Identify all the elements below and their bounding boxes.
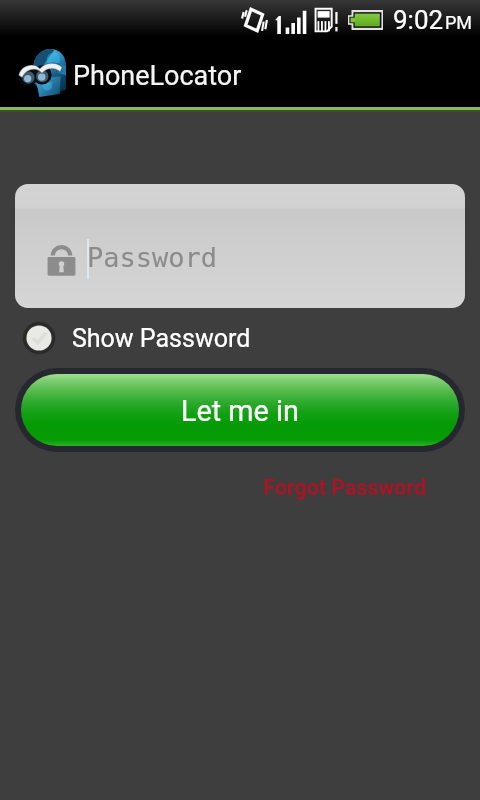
button[interactable]: Password bbox=[15, 184, 465, 308]
staticText: PM bbox=[445, 12, 473, 33]
staticText: 9:02 bbox=[393, 5, 444, 35]
staticText: Forgot Password bbox=[263, 475, 426, 500]
button[interactable]: Show Password bbox=[21, 315, 251, 361]
staticText: PhoneLocator bbox=[73, 60, 242, 92]
staticText: Password bbox=[87, 242, 218, 273]
button[interactable]: Let me in bbox=[21, 374, 459, 446]
staticText: Let me in bbox=[181, 394, 299, 428]
staticText: Show Password bbox=[72, 324, 251, 353]
button[interactable]: Forgot Password bbox=[263, 475, 426, 500]
